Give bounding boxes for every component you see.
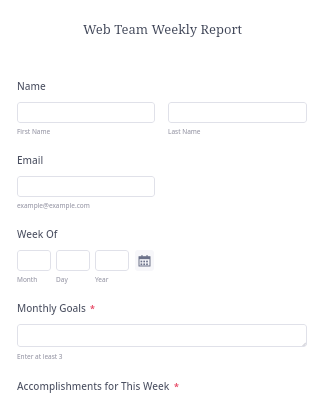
staticText: Web Team Weekly Report — [83, 20, 243, 38]
button[interactable] — [17, 176, 155, 197]
button[interactable]: Pick a date — [135, 250, 154, 271]
staticText: Month — [17, 275, 38, 284]
button[interactable] — [17, 102, 155, 123]
staticText: Accomplishments for This Week — [17, 379, 170, 393]
staticText: Enter at least 3 — [17, 352, 63, 361]
staticText: First Name — [17, 127, 51, 136]
staticText: example@example.com — [17, 201, 90, 210]
button[interactable] — [17, 250, 51, 271]
button[interactable] — [95, 250, 129, 271]
button[interactable] — [17, 324, 307, 347]
staticText: Monthly Goals — [17, 301, 86, 315]
button[interactable] — [56, 250, 90, 271]
staticText: Year — [95, 275, 109, 284]
button[interactable] — [168, 102, 307, 123]
staticText: Last Name — [168, 127, 201, 136]
staticText: Email — [17, 153, 44, 167]
staticText: * — [90, 302, 95, 314]
staticText: * — [174, 380, 179, 392]
staticText: Week Of — [17, 227, 58, 241]
staticText: Day — [56, 275, 68, 284]
staticText: Name — [17, 79, 46, 93]
